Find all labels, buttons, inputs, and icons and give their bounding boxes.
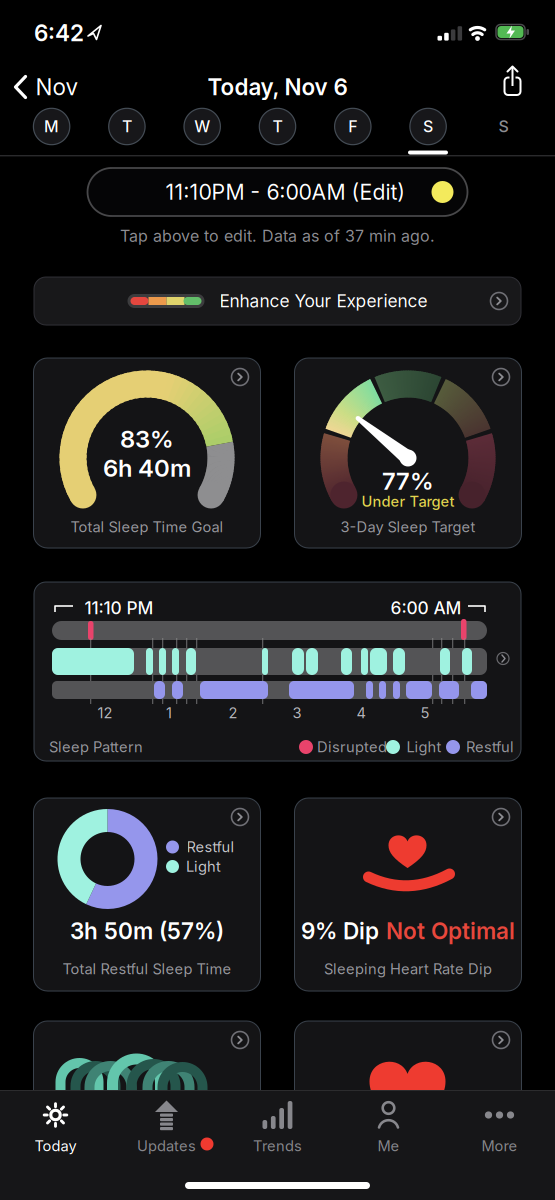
staticText: 3 bbox=[292, 704, 301, 722]
button[interactable]: Trends bbox=[222, 1092, 333, 1168]
staticText: 6:42 bbox=[34, 20, 84, 46]
button[interactable]: 11:10PM - 6:00AM (Edit) bbox=[87, 168, 467, 216]
button[interactable]: Share bbox=[490, 58, 534, 102]
staticText: W bbox=[194, 117, 210, 136]
staticText: Under Target bbox=[361, 493, 454, 510]
staticText: 3-Day Sleep Target bbox=[340, 518, 475, 536]
button[interactable]: Back bbox=[1, 65, 91, 109]
staticText: 6h 40m bbox=[103, 454, 191, 482]
staticText: Updates bbox=[137, 1137, 196, 1155]
staticText: 11:10PM - 6:00AM (Edit) bbox=[165, 179, 405, 205]
staticText: 2 bbox=[228, 704, 237, 722]
staticText: S bbox=[423, 117, 433, 136]
button[interactable] bbox=[33, 1021, 260, 1200]
staticText: T bbox=[272, 117, 282, 136]
staticText: Nov bbox=[35, 74, 78, 100]
staticText: 5 bbox=[420, 704, 429, 722]
button[interactable]: 9% Dip bbox=[294, 798, 521, 991]
staticText: Trends bbox=[253, 1137, 302, 1155]
staticText: Light bbox=[186, 858, 221, 875]
staticText: Today, Nov 6 bbox=[207, 74, 347, 100]
staticText: 9% Dip bbox=[301, 918, 379, 944]
staticText: 77% bbox=[382, 467, 434, 495]
staticText: F bbox=[348, 117, 357, 136]
button[interactable]: 77% bbox=[294, 358, 521, 548]
button[interactable]: Thursday bbox=[258, 107, 296, 145]
staticText: S bbox=[498, 117, 508, 136]
staticText: 4 bbox=[356, 704, 365, 722]
staticText: Restful bbox=[186, 838, 234, 856]
staticText: More bbox=[481, 1137, 517, 1155]
staticText: Disrupted bbox=[317, 738, 387, 756]
button[interactable]: Enhance Your Experience bbox=[34, 277, 521, 325]
button[interactable] bbox=[294, 1021, 521, 1200]
staticText: Me bbox=[377, 1137, 399, 1155]
button[interactable]: Wednesday bbox=[183, 107, 221, 145]
staticText: Enhance Your Experience bbox=[219, 291, 427, 311]
button[interactable]: More bbox=[444, 1092, 555, 1168]
staticText: T bbox=[122, 117, 132, 136]
staticText: 6:00 AM bbox=[390, 598, 461, 618]
staticText: Today bbox=[34, 1137, 76, 1155]
button[interactable]: 83% bbox=[33, 358, 260, 548]
button[interactable]: Me bbox=[333, 1092, 444, 1168]
button[interactable]: Today bbox=[0, 1092, 111, 1168]
button[interactable]: Sunday bbox=[484, 107, 522, 145]
button[interactable]: Monday bbox=[33, 107, 71, 145]
staticText: Total Restful Sleep Time bbox=[62, 960, 231, 978]
staticText: Sleep Pattern bbox=[49, 738, 143, 756]
staticText: Light bbox=[406, 738, 441, 756]
staticText: Tap above to edit. Data as of 37 min ago… bbox=[120, 227, 435, 245]
staticText: Restful bbox=[466, 738, 514, 756]
staticText: 12 bbox=[97, 704, 112, 722]
staticText: Total Sleep Time Goal bbox=[70, 518, 223, 536]
staticText: Not Optimal bbox=[386, 918, 515, 944]
staticText: 3h 50m (57%) bbox=[70, 918, 224, 944]
button[interactable]: Updates bbox=[111, 1092, 222, 1168]
button[interactable]: 11:10 PM bbox=[34, 582, 521, 761]
button[interactable]: Restful bbox=[33, 798, 260, 991]
button[interactable]: Tuesday bbox=[108, 107, 146, 145]
staticText: 83% bbox=[120, 425, 174, 453]
staticText: M bbox=[44, 117, 59, 136]
button[interactable]: Saturday bbox=[409, 107, 447, 145]
staticText: Sleeping Heart Rate Dip bbox=[324, 960, 492, 978]
staticText: 11:10 PM bbox=[84, 598, 153, 618]
staticText: 1 bbox=[166, 704, 172, 722]
button[interactable]: Friday bbox=[334, 107, 372, 145]
